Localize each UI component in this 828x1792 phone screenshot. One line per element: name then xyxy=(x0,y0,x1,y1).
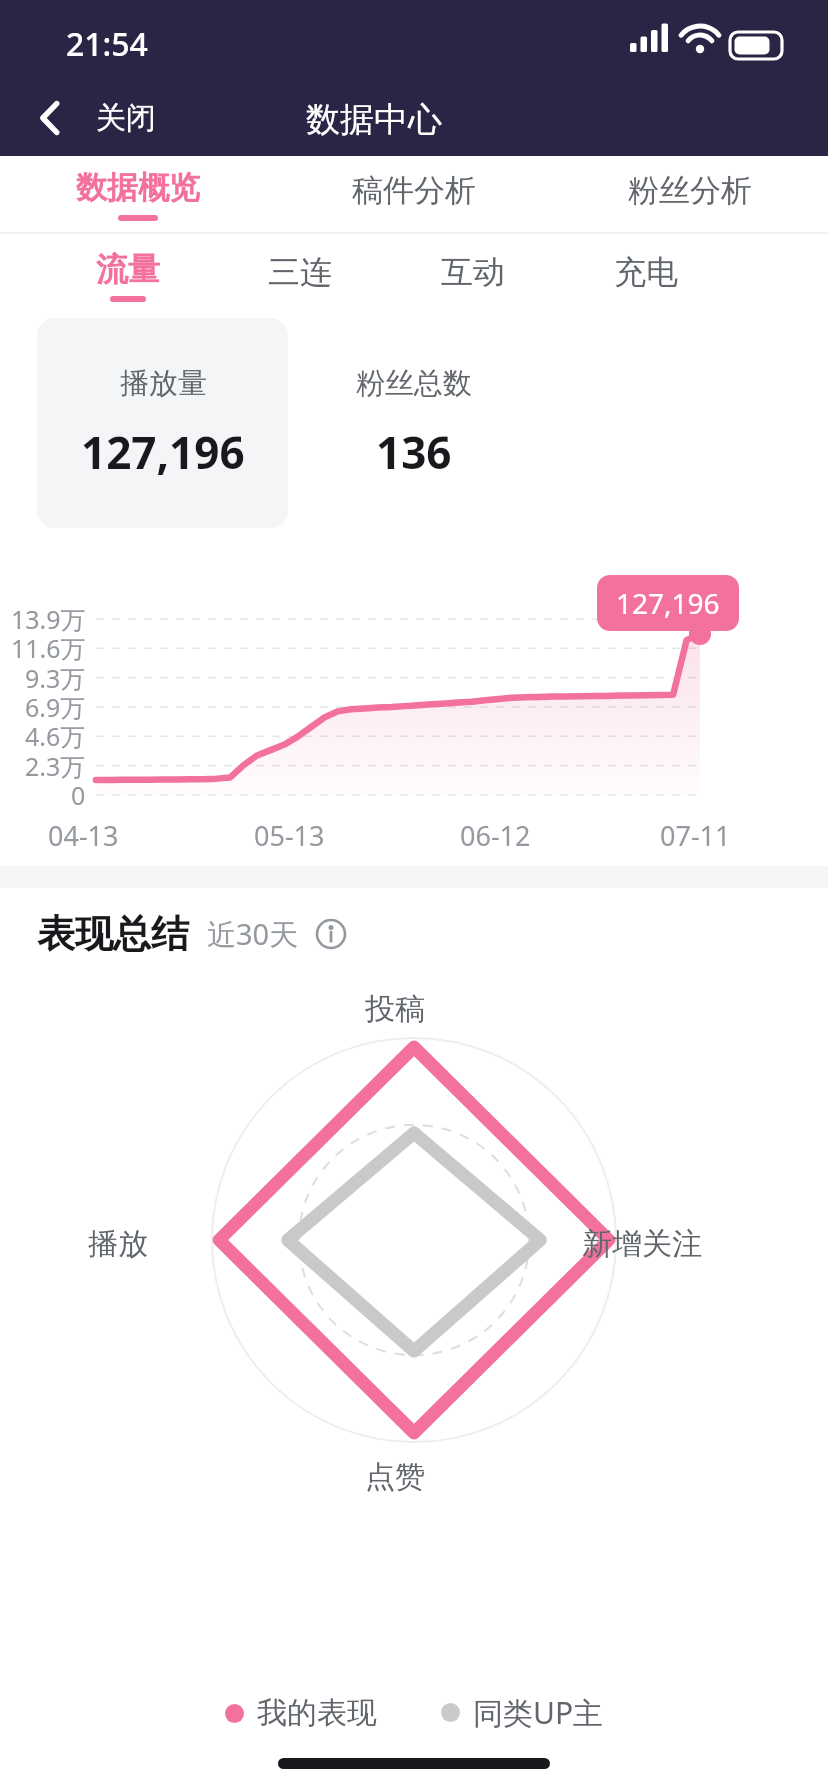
staticText: 投稿 xyxy=(365,990,425,1028)
button[interactable]: 三连 xyxy=(214,236,386,314)
staticText: 13.9万 xyxy=(11,602,86,636)
staticText: 关闭 xyxy=(96,99,156,137)
staticText: 数据概览 xyxy=(76,168,200,207)
staticText: 9.3万 xyxy=(25,661,86,695)
button[interactable]: 稿件分析 xyxy=(276,156,552,232)
button[interactable]: 充电 xyxy=(559,236,732,314)
button[interactable]: 粉丝总数 xyxy=(288,318,539,528)
staticText: 04-13 xyxy=(48,817,119,854)
staticText: 三连 xyxy=(268,252,332,292)
button[interactable]: Info xyxy=(315,918,347,950)
staticText: 互动 xyxy=(441,252,505,292)
staticText: 2.3万 xyxy=(25,749,86,783)
button[interactable]: 互动 xyxy=(386,236,559,314)
staticText: 表现总结 xyxy=(37,910,189,958)
button[interactable]: 我的表现 xyxy=(219,1688,383,1738)
button[interactable]: 流量 xyxy=(42,236,214,314)
staticText: 粉丝总数 xyxy=(356,365,472,402)
staticText: 流量 xyxy=(96,249,160,289)
staticText: 127,196 xyxy=(81,422,245,482)
staticText: 07-11 xyxy=(660,817,731,854)
staticText: 近30天 xyxy=(207,914,299,954)
button[interactable]: 粉丝分析 xyxy=(552,156,828,232)
staticText: 4.6万 xyxy=(25,719,86,753)
staticText: 点赞 xyxy=(365,1458,425,1496)
staticText: 播放量 xyxy=(120,365,207,402)
staticText: 充电 xyxy=(614,252,678,292)
staticText: 新增关注 xyxy=(582,1225,702,1263)
staticText: 136 xyxy=(376,422,452,482)
staticText: 6.9万 xyxy=(25,690,86,724)
button[interactable]: Close xyxy=(24,86,170,150)
staticText: 127,196 xyxy=(616,584,720,622)
staticText: 0 xyxy=(71,778,86,812)
staticText: 我的表现 xyxy=(257,1694,377,1732)
staticText: 11.6万 xyxy=(11,631,86,665)
staticText: 同类UP主 xyxy=(473,1692,604,1733)
button[interactable]: 播放量 xyxy=(37,318,288,528)
staticText: 稿件分析 xyxy=(352,171,476,210)
staticText: 数据中心 xyxy=(306,98,442,141)
button[interactable]: 同类UP主 xyxy=(435,1686,610,1739)
staticText: 05-13 xyxy=(254,817,325,854)
staticText: 06-12 xyxy=(460,817,531,854)
staticText: 播放 xyxy=(88,1225,148,1263)
staticText: 21:54 xyxy=(66,22,148,66)
button[interactable]: 数据概览 xyxy=(0,156,276,232)
staticText: 粉丝分析 xyxy=(628,171,752,210)
